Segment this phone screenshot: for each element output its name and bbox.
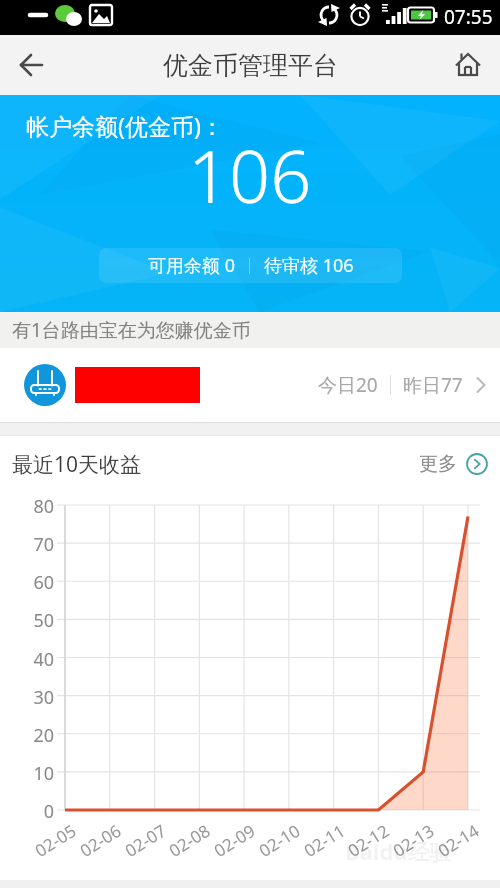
- button[interactable]: Home: [442, 35, 500, 95]
- staticText: 02-14: [427, 819, 483, 866]
- staticText: 10: [0, 761, 54, 786]
- staticText: 优金币管理平台: [163, 50, 338, 81]
- staticText: 02-13: [382, 819, 438, 866]
- staticText: 30: [0, 685, 54, 710]
- staticText: 02-12: [337, 819, 393, 866]
- staticText: 02-11: [293, 819, 349, 866]
- staticText: 最近10天收益: [12, 450, 142, 479]
- staticText: 80: [0, 494, 54, 519]
- button[interactable]: 可用余额 0: [99, 248, 402, 283]
- staticText: 可用余额 0: [148, 253, 235, 278]
- staticText: 70: [0, 532, 54, 557]
- button[interactable]: 今日20: [0, 348, 500, 422]
- staticText: 0: [0, 799, 54, 824]
- staticText: 02-05: [24, 819, 80, 866]
- button[interactable]: 更多: [419, 452, 488, 476]
- staticText: 07:55: [444, 4, 493, 30]
- staticText: 02-08: [158, 819, 214, 866]
- staticText: 昨日77: [403, 372, 463, 398]
- staticText: 02-10: [248, 819, 304, 866]
- staticText: Baidu经验: [345, 836, 452, 866]
- staticText: 更多: [419, 452, 457, 476]
- staticText: 106: [188, 126, 312, 224]
- button[interactable]: Back: [0, 35, 58, 95]
- staticText: 60: [0, 570, 54, 595]
- staticText: 20: [0, 723, 54, 748]
- staticText: 帐户余额(优金币)：: [26, 110, 224, 141]
- staticText: 02-06: [69, 819, 125, 866]
- staticText: 02-07: [114, 819, 170, 866]
- staticText: 50: [0, 608, 54, 633]
- staticText: 待审核 106: [264, 253, 354, 278]
- staticText: 40: [0, 647, 54, 672]
- staticText: 今日20: [318, 372, 378, 398]
- staticText: 有1台路由宝在为您赚优金币: [12, 317, 251, 343]
- staticText: 02-09: [203, 819, 259, 866]
